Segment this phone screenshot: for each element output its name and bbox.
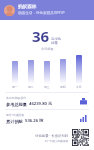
- button[interactable]: 蚂蚁森林: [0, 0, 94, 20]
- staticText: 今日能量: [41, 47, 54, 51]
- button[interactable]: [60, 59, 66, 84]
- staticText: 累计·已减排量: [6, 113, 25, 117]
- staticText: 周二: [28, 85, 34, 89]
- staticText: 蚂蚁森林: [18, 4, 37, 10]
- staticText: 周三: [44, 85, 50, 89]
- button[interactable]: [12, 61, 18, 84]
- staticText: 46239.80 元: [29, 101, 53, 107]
- button[interactable]: [28, 60, 34, 84]
- staticText: 能量: [51, 41, 58, 45]
- staticText: 累计捐献: [6, 119, 23, 124]
- button[interactable]: [76, 55, 82, 84]
- staticText: 克绿色: [51, 37, 62, 41]
- button[interactable]: [44, 61, 50, 84]
- button[interactable]: 本月已获取积分: [0, 93, 94, 109]
- button[interactable]: 累计·已减排量: [0, 110, 94, 126]
- staticText: 周一: [12, 85, 18, 89]
- staticText: 参考总能量: [6, 102, 27, 107]
- staticText: 绿色能量 · 长按识别码: [35, 133, 69, 138]
- staticText: 36: [32, 26, 50, 46]
- staticText: 536.26 吨: [25, 118, 44, 124]
- button[interactable]: Donation details: [78, 113, 88, 123]
- button[interactable]: Energy details: [78, 96, 88, 106]
- staticText: 今日: [76, 85, 82, 89]
- staticText: 扫一扫加入蚂蚁森林: [45, 139, 69, 142]
- staticText: 低碳生活，绿色家园共同守护: [18, 11, 65, 16]
- staticText: 周四: [60, 85, 66, 89]
- staticText: 本月已获取积分: [6, 96, 27, 100]
- button[interactable]: QR code: [72, 129, 89, 146]
